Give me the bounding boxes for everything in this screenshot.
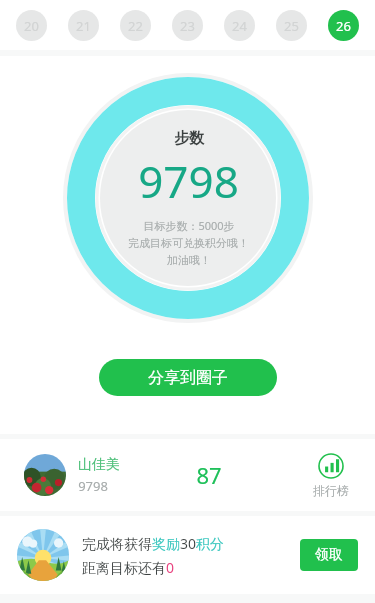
staticText: 距离目标还有0	[82, 558, 175, 577]
button[interactable]: 排行榜	[309, 453, 353, 498]
button[interactable]: 山佳美	[0, 439, 375, 511]
staticText: 9798	[138, 151, 239, 211]
staticText: 87	[196, 460, 222, 490]
staticText: 9798	[78, 477, 108, 495]
staticText: 23	[180, 17, 195, 35]
staticText: 20	[24, 17, 39, 35]
staticText: 领取	[315, 546, 343, 564]
staticText: 目标步数：5000步	[143, 218, 235, 233]
staticText: 完成目标可兑换积分哦！	[128, 236, 249, 250]
button[interactable]: 25	[276, 10, 307, 41]
staticText: 21	[76, 17, 91, 35]
button[interactable]: 分享到圈子	[99, 359, 277, 396]
button[interactable]: 24	[224, 10, 255, 41]
staticText: 完成将获得奖励30积分	[82, 534, 225, 553]
staticText: 分享到圈子	[148, 368, 228, 388]
staticText: 加油哦！	[167, 253, 211, 267]
staticText: 22	[128, 17, 143, 35]
staticText: 26	[336, 17, 351, 35]
button[interactable]: 领取	[300, 539, 358, 571]
button[interactable]: 21	[68, 10, 99, 41]
staticText: 步数	[174, 129, 204, 148]
button[interactable]: 20	[16, 10, 47, 41]
staticText: 山佳美	[78, 456, 120, 474]
staticText: 24	[232, 17, 247, 35]
button[interactable]: 23	[172, 10, 203, 41]
button[interactable]: 26	[328, 10, 359, 41]
staticText: 排行榜	[313, 483, 349, 498]
button[interactable]: 22	[120, 10, 151, 41]
staticText: 25	[284, 17, 299, 35]
